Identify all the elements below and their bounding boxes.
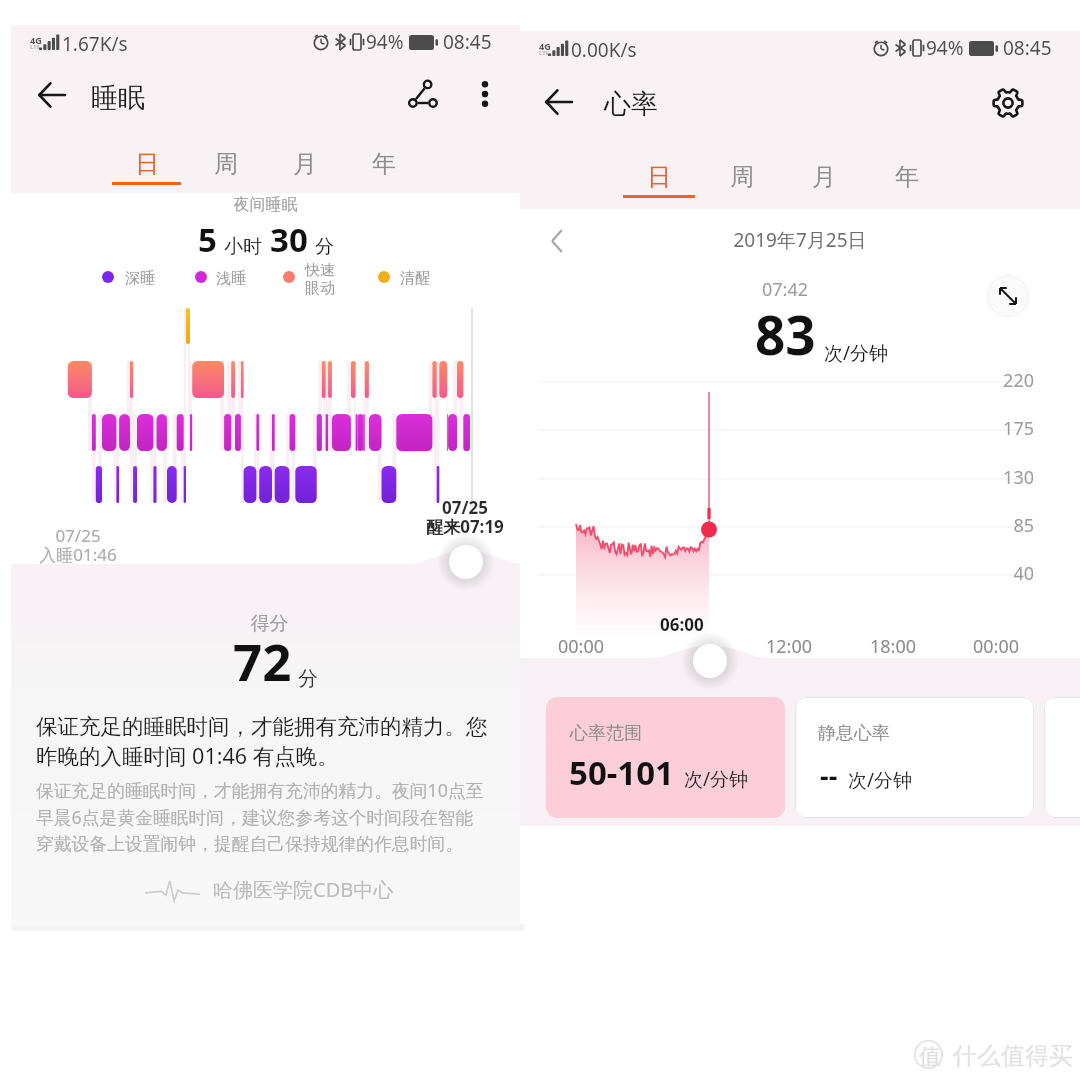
button[interactable]: Expand chart [987,275,1029,317]
staticText: 4G [30,34,42,46]
button[interactable]: 周 [708,151,776,201]
button[interactable]: Previous day [534,218,580,264]
staticText: 清醒 [400,269,430,288]
staticText: 保证充足的睡眠时间，才能拥有充沛的精力。您 昨晚的入睡时间 01:46 有点晚。 [36,713,488,770]
staticText: 83 [755,298,816,370]
staticText: 2019年7月25日 [520,227,1080,253]
staticText: 次/分钟 [684,766,749,792]
staticText: 快速 眼动 [305,261,335,297]
staticText: 深睡 [125,269,155,288]
staticText: 07/25 入睡01:46 [38,524,118,566]
staticText: 值 [919,1043,941,1071]
staticText: 1.67K/s [62,31,128,57]
staticText: 85 [954,513,1034,538]
button[interactable]: 月 [271,138,339,188]
staticText: 分 [298,666,318,691]
button[interactable]: Back [27,71,75,119]
staticText: 30 [270,217,308,262]
staticText: -- [820,757,838,794]
button[interactable]: 日 [625,151,693,201]
button[interactable]: 静息心率 [795,697,1034,818]
staticText: 得分 [11,612,528,636]
staticText: 周 [214,149,238,179]
staticText: 50-101 [569,750,674,795]
staticText: 年 [372,149,396,179]
staticText: 4G [539,40,551,52]
staticText: 07:42 [740,277,830,302]
staticText: 夜间睡眠 [11,195,520,215]
staticText: 周 [730,162,754,192]
button[interactable]: 年 [873,151,941,201]
staticText: 175 [954,416,1034,441]
staticText: 08:45 [1003,35,1052,61]
staticText: 220 [954,368,1034,393]
button[interactable]: More options [463,72,507,116]
button[interactable]: Back [534,78,582,126]
staticText: 94% [926,35,964,61]
staticText: 心率范围 [570,722,642,745]
staticText: 次/分钟 [824,340,889,366]
staticText: LTE [30,43,41,51]
staticText: 5 [198,217,217,262]
staticText: 40 [954,561,1034,586]
staticText: 小时 [224,235,262,259]
button[interactable]: Share [401,71,447,117]
staticText: 18:00 [870,634,917,659]
button[interactable]: 周 [192,138,260,188]
staticText: 睡眠 [91,81,145,115]
button[interactable]: 日 [113,138,181,188]
button[interactable]: 心率范围 [546,697,785,818]
staticText: 次/分钟 [848,767,913,793]
staticText: 00:00 [558,634,605,659]
button[interactable]: Scrub [693,644,727,678]
staticText: 130 [954,465,1034,490]
staticText: 心率 [604,87,658,121]
staticText: LTE [539,49,550,57]
staticText: 94% [366,29,404,55]
staticText: 哈佛医学院CDB中心 [213,876,394,903]
staticText: 保证充足的睡眠时间，才能拥有充沛的精力。夜间10点至 早晨6点是黄金睡眠时间，建… [36,778,484,856]
staticText: 0.00K/s [571,37,637,63]
staticText: 06:00 [660,613,704,636]
button[interactable]: Settings [984,79,1032,127]
staticText: 07/25 醒来07:19 [426,496,504,538]
staticText: 什么值得买 [953,1041,1073,1071]
staticText: 00:00 [973,634,1020,659]
staticText: 浅睡 [216,269,246,288]
staticText: 静息心率 [818,722,890,745]
button[interactable]: 月 [790,151,858,201]
staticText: 72 [233,626,292,695]
staticText: 日 [135,149,159,179]
staticText: 月 [812,162,836,192]
button[interactable]: Sleep details [449,545,483,579]
staticText: 08:45 [443,29,492,55]
staticText: 分 [315,235,334,259]
staticText: 12:00 [766,634,813,659]
staticText: 日 [647,162,671,192]
staticText: 月 [293,149,317,179]
button[interactable]: 年 [350,138,418,188]
staticText: 年 [895,162,919,192]
